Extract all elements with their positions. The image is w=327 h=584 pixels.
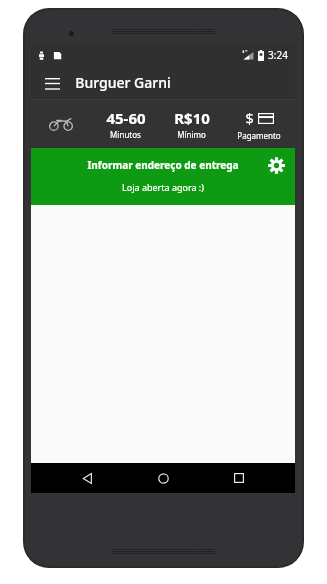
button[interactable]: Menu <box>37 68 67 98</box>
button[interactable]: Informar endereço de entrega <box>31 148 295 181</box>
staticText: 3:24 <box>268 48 288 62</box>
staticText: Burguer Garni <box>75 73 171 92</box>
button[interactable]: $ <box>223 100 295 148</box>
button[interactable]: Back <box>67 463 107 493</box>
staticText: Pagamento <box>237 130 281 141</box>
staticText: Mínimo <box>177 129 206 140</box>
button[interactable]: Home <box>143 463 183 493</box>
staticText: Informar endereço de entrega <box>87 158 239 172</box>
staticText: 45-60 <box>106 108 146 128</box>
staticText: $ <box>245 108 254 128</box>
staticText: Loja aberta agora :) <box>122 181 204 193</box>
button[interactable]: Recents <box>219 463 259 493</box>
staticText: R$10 <box>174 108 210 128</box>
button[interactable]: Configurações <box>263 152 289 178</box>
button[interactable]: Entrega <box>31 100 91 148</box>
staticText: Minutos <box>110 129 141 140</box>
button[interactable]: 45-60 <box>91 100 160 148</box>
button[interactable]: R$10 <box>160 100 223 148</box>
